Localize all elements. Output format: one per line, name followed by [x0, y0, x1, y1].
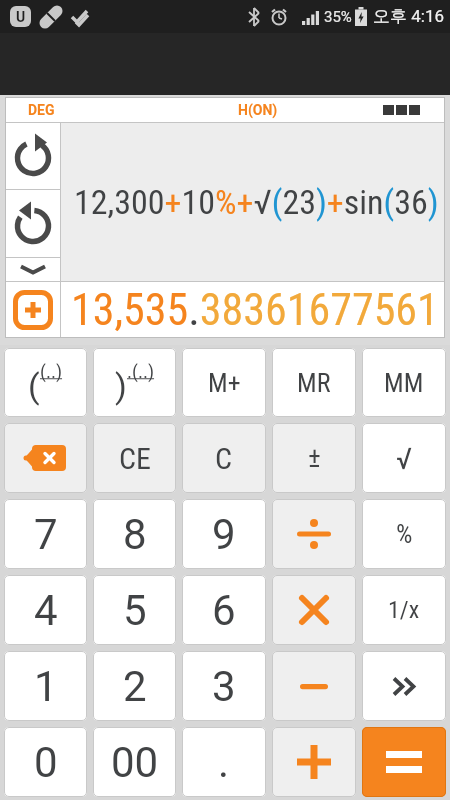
button[interactable]: [272, 575, 356, 645]
button[interactable]: [362, 727, 446, 797]
staticText: 12,300+10%+√(23)+sin(36): [74, 182, 439, 222]
button[interactable]: CE: [93, 423, 176, 493]
button[interactable]: MM: [362, 348, 446, 417]
button[interactable]: 6: [182, 575, 266, 645]
button[interactable]: MR: [272, 348, 356, 417]
button[interactable]: [5, 123, 60, 189]
button[interactable]: 5: [93, 575, 176, 645]
staticText: DEG: [28, 102, 55, 118]
button[interactable]: 0: [4, 727, 87, 797]
button[interactable]: 2: [93, 651, 176, 721]
staticText: .: [218, 738, 230, 787]
staticText: 9: [212, 510, 236, 559]
staticText: H(ON): [238, 102, 278, 118]
button[interactable]: ): [93, 348, 176, 417]
staticText: C: [215, 441, 233, 476]
staticText: 7: [34, 510, 58, 559]
staticText: 8: [123, 510, 147, 559]
staticText: 1: [34, 662, 58, 711]
button[interactable]: 00: [93, 727, 176, 797]
staticText: (: [28, 366, 40, 406]
staticText: CE: [119, 441, 151, 476]
button[interactable]: 4: [4, 575, 87, 645]
staticText: 4: [34, 586, 58, 635]
button[interactable]: ±: [272, 423, 356, 493]
button[interactable]: C: [182, 423, 266, 493]
button[interactable]: 1: [4, 651, 87, 721]
button[interactable]: [5, 190, 60, 257]
button[interactable]: [272, 651, 356, 721]
staticText: 5: [123, 586, 147, 635]
button[interactable]: √: [362, 423, 446, 493]
staticText: 오후 4:16: [373, 6, 444, 27]
button[interactable]: 8: [93, 499, 176, 569]
staticText: 3: [212, 662, 236, 711]
staticText: 35%: [324, 8, 352, 26]
staticText: 00: [111, 738, 159, 787]
staticText: √: [396, 441, 413, 476]
staticText: 6: [212, 586, 236, 635]
button[interactable]: [5, 282, 60, 338]
button[interactable]: M+: [182, 348, 266, 417]
staticText: 1/x: [388, 596, 420, 624]
button[interactable]: (: [4, 348, 87, 417]
staticText: ): [115, 366, 127, 406]
staticText: 2: [123, 662, 147, 711]
button[interactable]: 3: [182, 651, 266, 721]
staticText: MR: [297, 368, 331, 398]
button[interactable]: [4, 423, 87, 493]
staticText: .(..): [127, 360, 155, 382]
staticText: M+: [208, 368, 241, 398]
staticText: 13,535.38361677561: [71, 284, 439, 336]
button[interactable]: %: [362, 499, 446, 569]
staticText: (..): [40, 360, 63, 382]
button[interactable]: [5, 258, 60, 281]
button[interactable]: [272, 727, 356, 797]
button[interactable]: 1/x: [362, 575, 446, 645]
staticText: %: [396, 519, 413, 549]
staticText: MM: [384, 368, 424, 398]
button[interactable]: [272, 499, 356, 569]
staticText: U: [16, 9, 26, 25]
staticText: ±: [308, 442, 321, 474]
button[interactable]: 9: [182, 499, 266, 569]
button[interactable]: 7: [4, 499, 87, 569]
staticText: 0: [34, 738, 58, 787]
button[interactable]: .: [182, 727, 266, 797]
button[interactable]: [362, 651, 446, 721]
